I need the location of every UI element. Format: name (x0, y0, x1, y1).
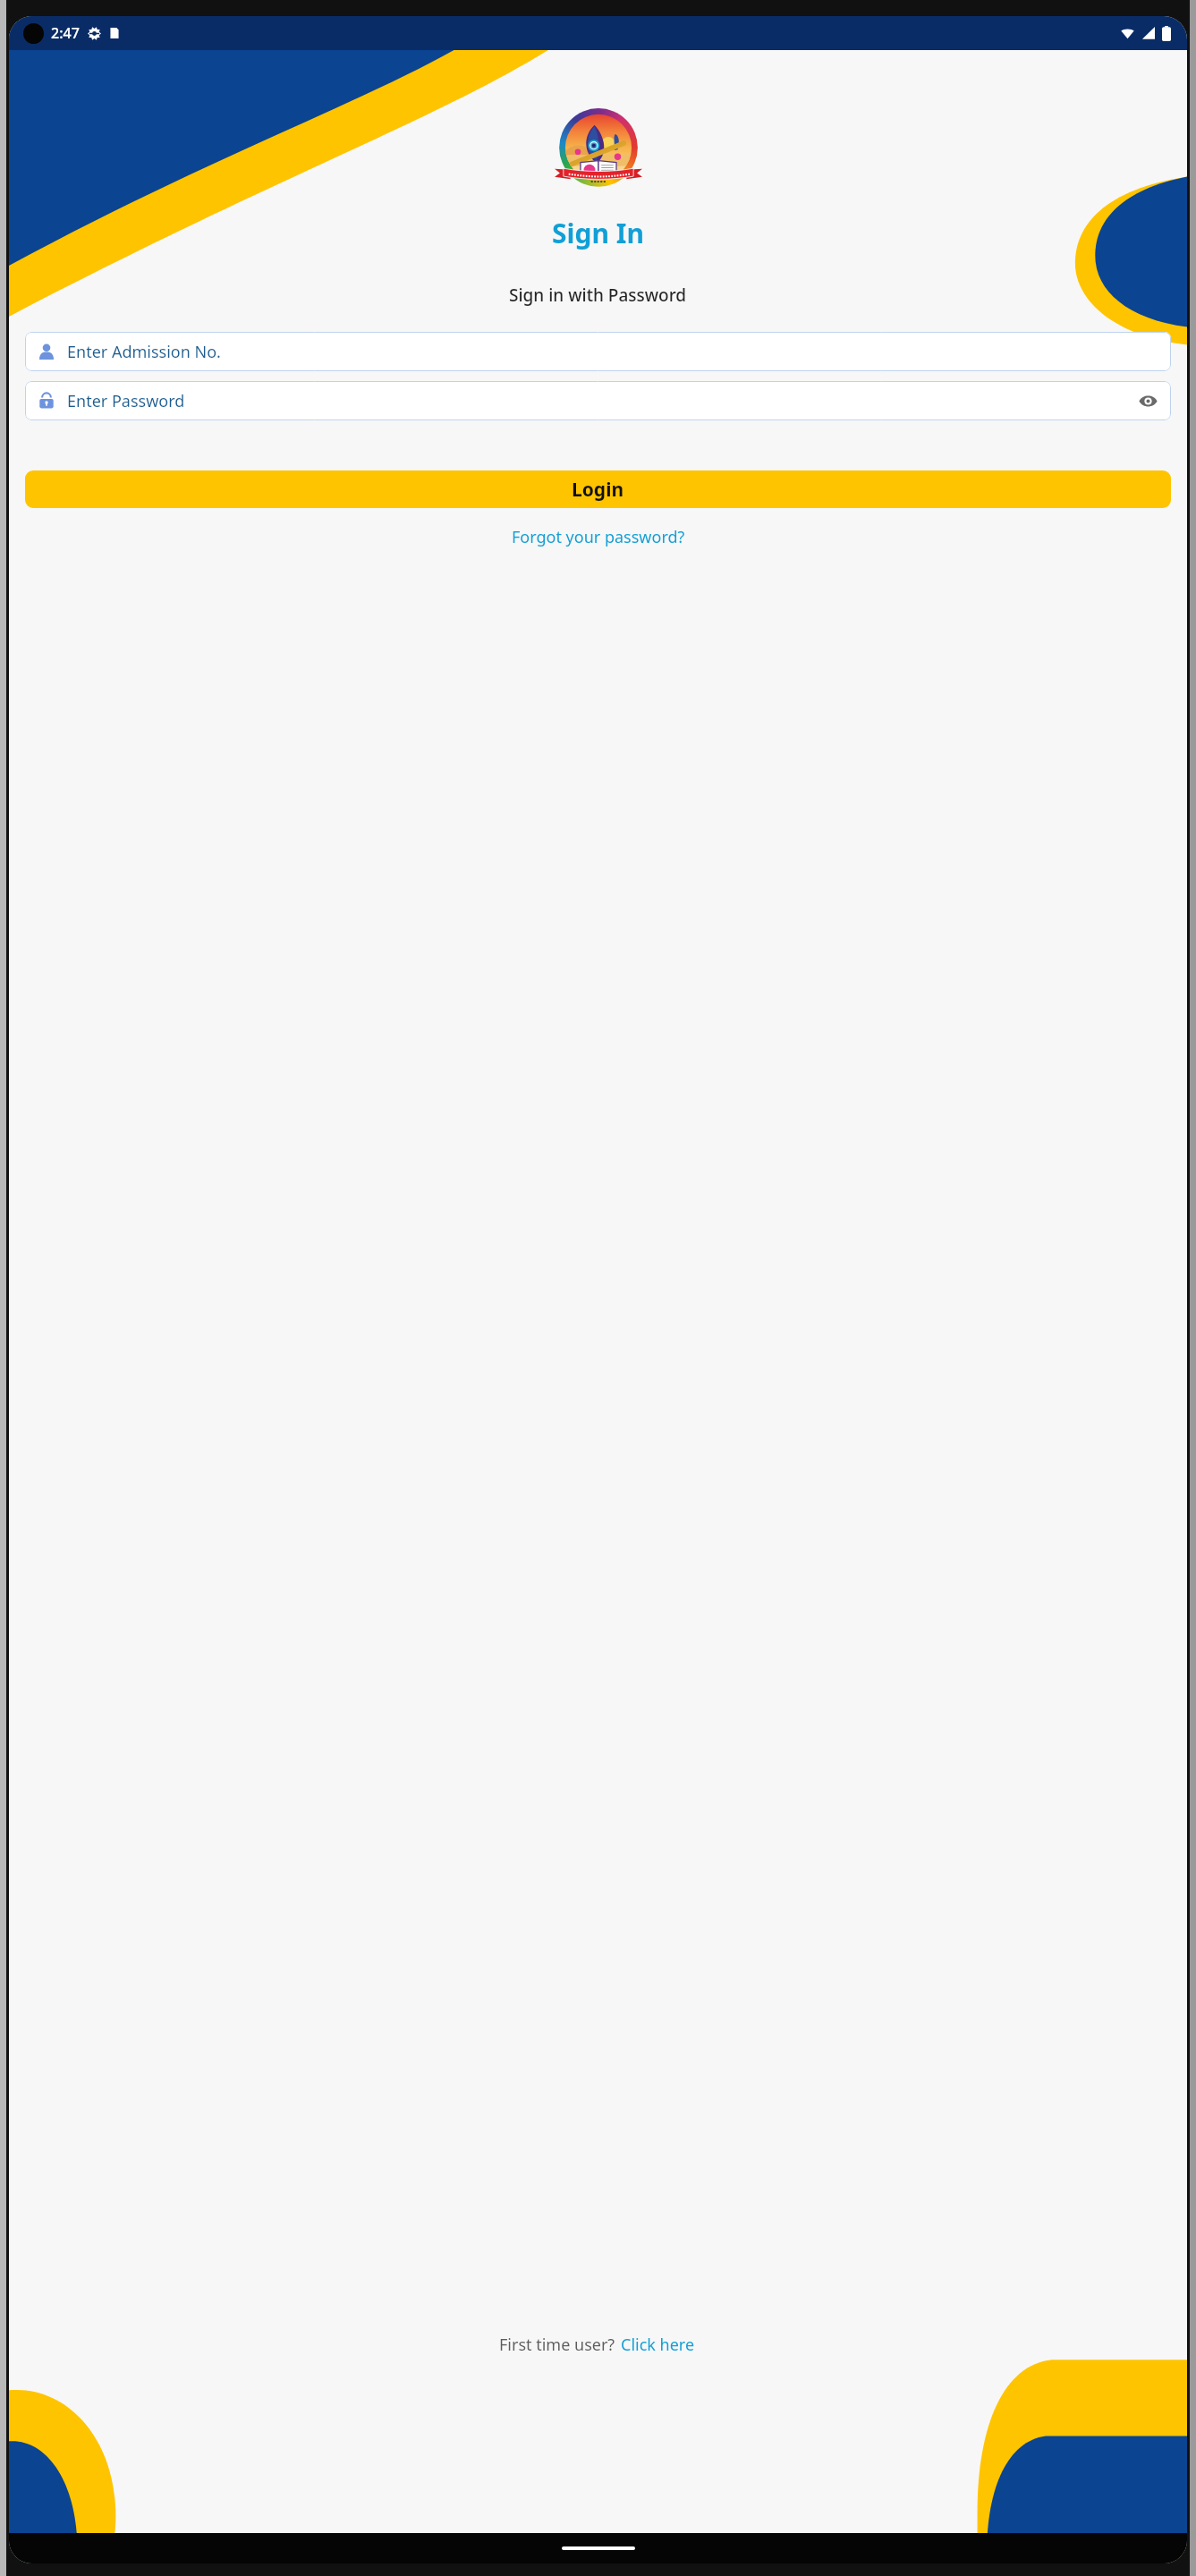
staticText: 2:47 (51, 23, 80, 43)
button[interactable]: Enter Password (25, 381, 1171, 420)
staticText: Sign In (552, 215, 644, 251)
staticText: Sign in with Password (509, 284, 687, 307)
button[interactable]: Forgot your password? (505, 522, 692, 552)
staticText: Click here (621, 2334, 695, 2356)
staticText: First time user? (499, 2334, 619, 2356)
button[interactable]: Enter Admission No. (25, 332, 1171, 371)
staticText: Enter Admission No. (67, 341, 221, 363)
staticText: Forgot your password? (512, 526, 685, 548)
staticText: Login (572, 477, 624, 503)
button[interactable]: Login (25, 470, 1171, 508)
button[interactable]: Click here (619, 2332, 697, 2358)
button[interactable]: Show password (1135, 388, 1160, 413)
staticText: Enter Password (67, 390, 185, 412)
